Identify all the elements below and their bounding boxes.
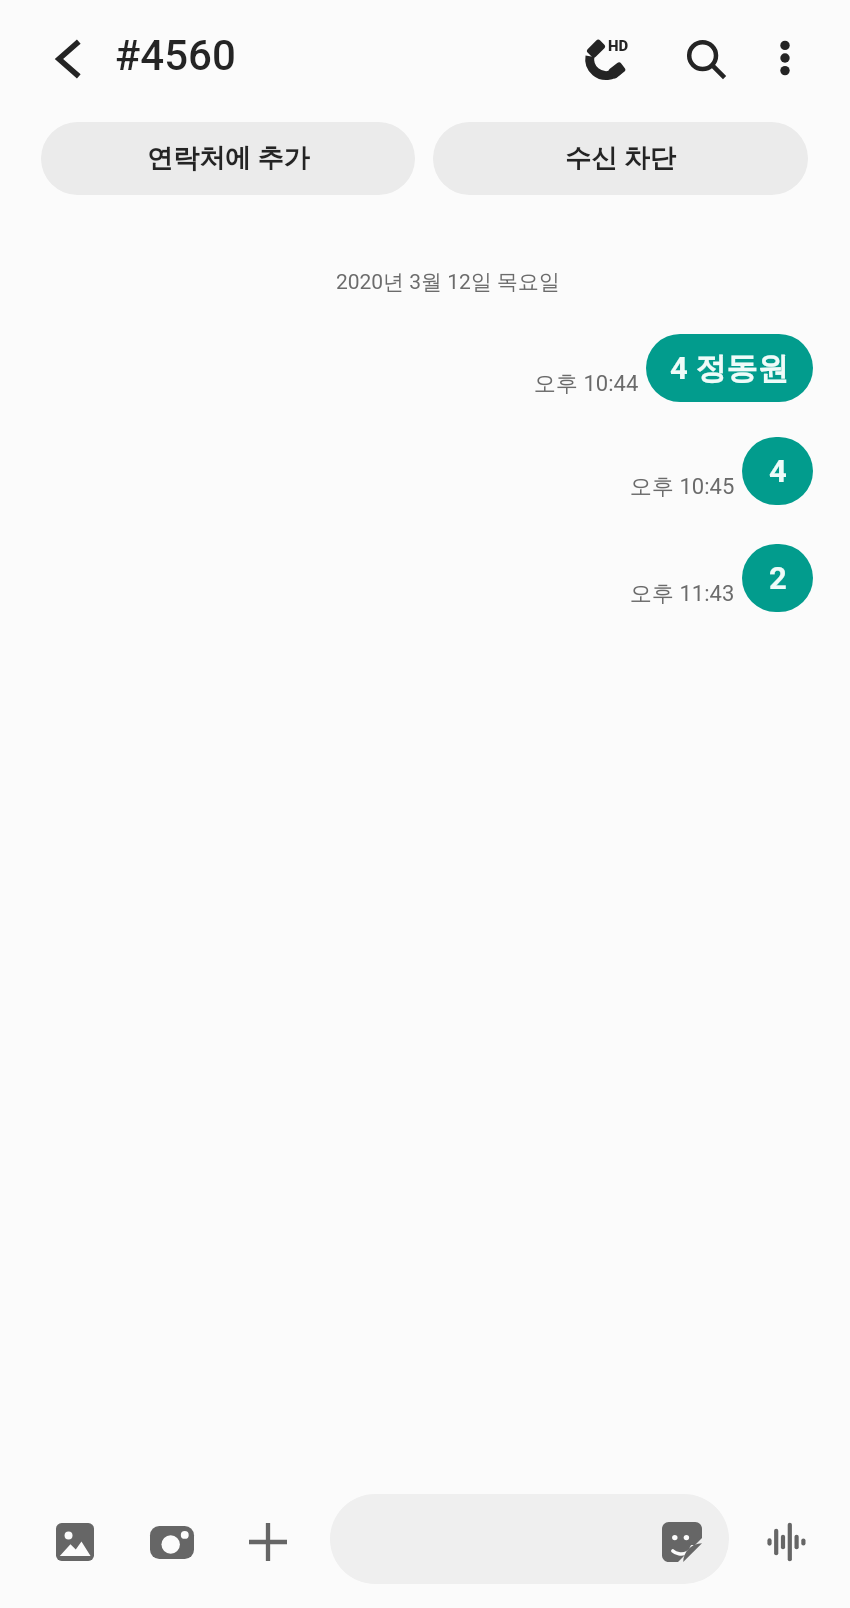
button[interactable]: Voice input	[759, 1514, 815, 1570]
button[interactable]: Search	[678, 31, 736, 89]
staticText: 4	[769, 453, 787, 489]
staticText: 2	[769, 560, 787, 596]
button[interactable]: Add attachment	[240, 1514, 296, 1570]
staticText: 수신 차단	[565, 142, 676, 175]
staticText: 연락처에 추가	[147, 142, 310, 175]
staticText: 4 정동원	[670, 349, 789, 388]
staticText: #4560	[115, 31, 236, 80]
button[interactable]: Camera	[144, 1514, 200, 1570]
button[interactable]: 수신 차단	[433, 122, 808, 195]
button[interactable]: Back	[38, 30, 96, 88]
button[interactable]: 2	[742, 544, 813, 612]
button[interactable]: 연락처에 추가	[41, 122, 415, 195]
staticText: 2020년 3월 12일 목요일	[23, 269, 850, 295]
button[interactable]: 4	[742, 437, 813, 505]
staticText: 오후 10:44	[534, 370, 639, 398]
button[interactable]: Enter message	[330, 1494, 729, 1584]
staticText: 오후 11:43	[630, 580, 735, 608]
staticText: 오후 10:45	[630, 473, 735, 501]
button[interactable]: HD voice call	[573, 29, 637, 93]
button[interactable]: More options	[756, 29, 814, 87]
button[interactable]: Gallery	[47, 1514, 103, 1570]
button[interactable]: Stickers	[654, 1514, 710, 1570]
staticText: HD	[608, 37, 629, 55]
button[interactable]: 4 정동원	[646, 334, 813, 402]
